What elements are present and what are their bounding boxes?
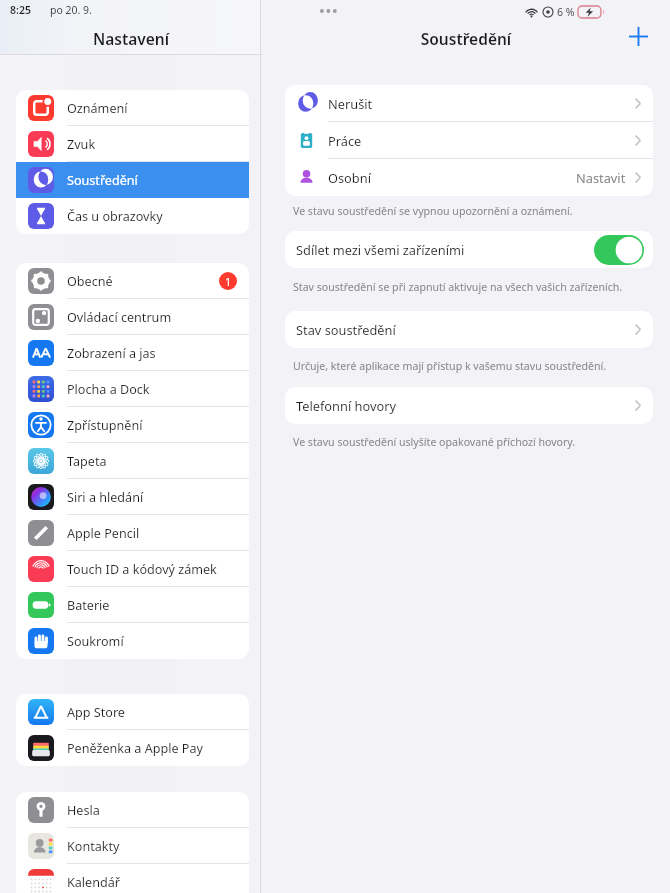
staticText: Hesla — [67, 802, 249, 819]
staticText: App Store — [67, 704, 249, 721]
staticText: Osobní — [328, 169, 576, 186]
button[interactable]: Hesla — [16, 792, 249, 828]
button[interactable]: Zvuk — [16, 126, 249, 162]
staticText: Obecné — [67, 273, 219, 290]
staticText: Soustředění — [262, 28, 670, 49]
staticText: Nastavení — [0, 28, 262, 49]
button[interactable]: Stav soustředění — [285, 311, 653, 348]
staticText: Zvuk — [67, 136, 249, 153]
staticText: po 20. 9. — [50, 3, 92, 17]
staticText: Nastavit — [576, 169, 626, 186]
button[interactable]: Add focus — [624, 22, 652, 50]
button[interactable]: Baterie — [16, 587, 249, 623]
staticText: Práce — [328, 132, 634, 149]
staticText: Ovládací centrum — [67, 309, 249, 326]
button[interactable]: Nerušit — [285, 85, 653, 122]
staticText: Oznámení — [67, 100, 249, 117]
button[interactable]: Tapeta — [16, 443, 249, 479]
button[interactable]: Práce — [285, 122, 653, 159]
staticText: Touch ID a kódový zámek — [67, 561, 249, 578]
button[interactable]: Zobrazení a jas — [16, 335, 249, 371]
button[interactable]: Telefonní hovory — [285, 387, 653, 424]
button[interactable]: Siri a hledání — [16, 479, 249, 515]
staticText: Stav soustředění — [296, 321, 634, 338]
button[interactable]: Touch ID a kódový zámek — [16, 551, 249, 587]
staticText: Kalendář — [67, 874, 249, 891]
button[interactable]: Sdílet mezi všemi zařízeními — [285, 231, 653, 268]
button[interactable]: Oznámení — [16, 90, 249, 126]
staticText: Soukromí — [67, 633, 249, 650]
button[interactable]: Apple Pencil — [16, 515, 249, 551]
button[interactable]: Ovládací centrum — [16, 299, 249, 335]
button[interactable]: Kalendář — [16, 864, 249, 893]
staticText: Telefonní hovory — [296, 397, 634, 414]
staticText: 8:25 — [10, 3, 31, 17]
button[interactable]: Peněženka a Apple Pay — [16, 730, 249, 766]
staticText: Kontakty — [67, 838, 249, 855]
staticText: 1 — [225, 274, 232, 289]
staticText: Ve stavu soustředění uslyšíte opakované … — [293, 435, 653, 449]
staticText: Baterie — [67, 597, 249, 614]
button[interactable]: Soustředění — [16, 162, 249, 198]
button[interactable]: Zpřístupnění — [16, 407, 249, 443]
staticText: Sdílet mezi všemi zařízeními — [296, 241, 594, 258]
button[interactable]: Soukromí — [16, 623, 249, 659]
button[interactable]: Obecné — [16, 263, 249, 299]
staticText: Zpřístupnění — [67, 417, 249, 434]
staticText: Zobrazení a jas — [67, 345, 249, 362]
staticText: Určuje, které aplikace mají přístup k va… — [293, 359, 653, 373]
staticText: Ve stavu soustředění se vypnou upozorněn… — [293, 204, 653, 218]
staticText: Čas u obrazovky — [67, 208, 249, 225]
staticText: Tapeta — [67, 453, 249, 470]
staticText: Soustředění — [67, 172, 249, 189]
button[interactable]: Plocha a Dock — [16, 371, 249, 407]
staticText: Siri a hledání — [67, 489, 249, 506]
button[interactable]: Kontakty — [16, 828, 249, 864]
staticText: Plocha a Dock — [67, 381, 249, 398]
button[interactable]: Osobní — [285, 159, 653, 196]
staticText: Stav soustředění se při zapnutí aktivuje… — [293, 280, 653, 294]
staticText: Nerušit — [328, 95, 634, 112]
button[interactable]: Čas u obrazovky — [16, 198, 249, 234]
button[interactable]: App Store — [16, 694, 249, 730]
staticText: Peněženka a Apple Pay — [67, 740, 249, 757]
staticText: Apple Pencil — [67, 525, 249, 542]
staticText: 6 % — [557, 5, 575, 19]
